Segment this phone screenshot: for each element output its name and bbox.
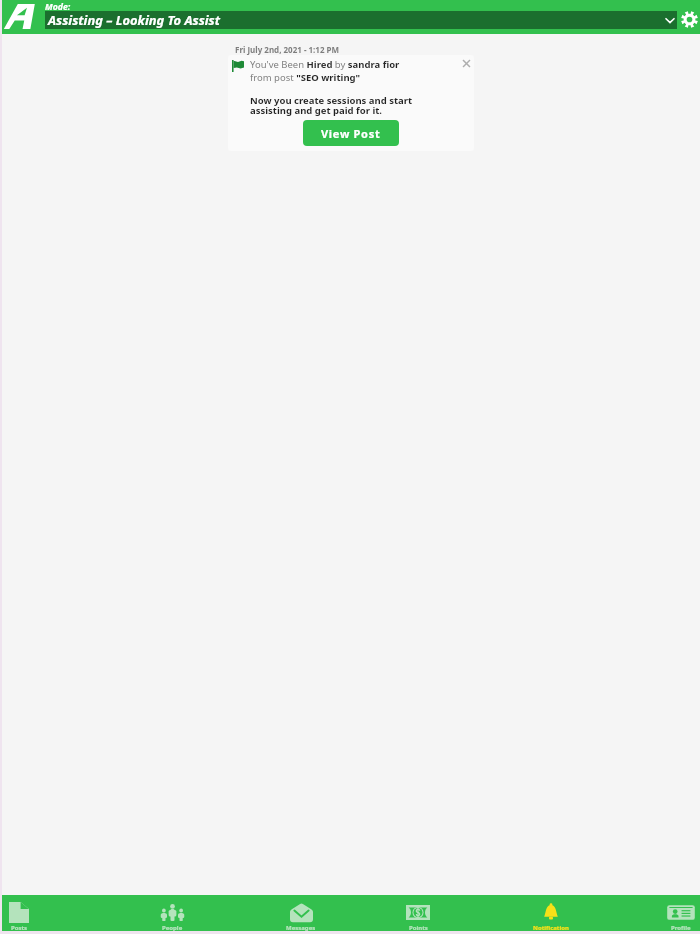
button[interactable]: Settings <box>679 9 700 30</box>
staticText: View Post <box>321 126 381 141</box>
staticText: Assisting – Looking To Assist <box>48 11 221 29</box>
staticText: Now you create sessions and start assist… <box>250 94 413 117</box>
button[interactable]: People <box>136 895 208 931</box>
staticText: Points <box>409 924 428 932</box>
staticText: Mode: <box>45 1 71 13</box>
staticText: Posts <box>11 924 28 932</box>
staticText: People <box>162 924 183 932</box>
button[interactable]: Messages <box>265 895 337 931</box>
staticText: Notification <box>533 924 569 932</box>
staticText: Messages <box>286 924 316 932</box>
button[interactable]: Profile <box>645 895 700 931</box>
button[interactable]: Close <box>459 56 473 70</box>
staticText: You've Been Hired by sandra fior <box>250 58 400 71</box>
button[interactable]: Posts <box>0 895 55 931</box>
button[interactable]: Assisting – Looking To Assist <box>45 11 677 29</box>
button[interactable]: Notification <box>515 895 587 931</box>
staticText: Fri July 2nd, 2021 - 1:12 PM <box>235 44 340 55</box>
staticText: from post "SEO writing" <box>250 71 361 84</box>
button[interactable]: View Post <box>303 120 399 146</box>
staticText: Profile <box>671 924 691 932</box>
button[interactable]: Points <box>382 895 454 931</box>
